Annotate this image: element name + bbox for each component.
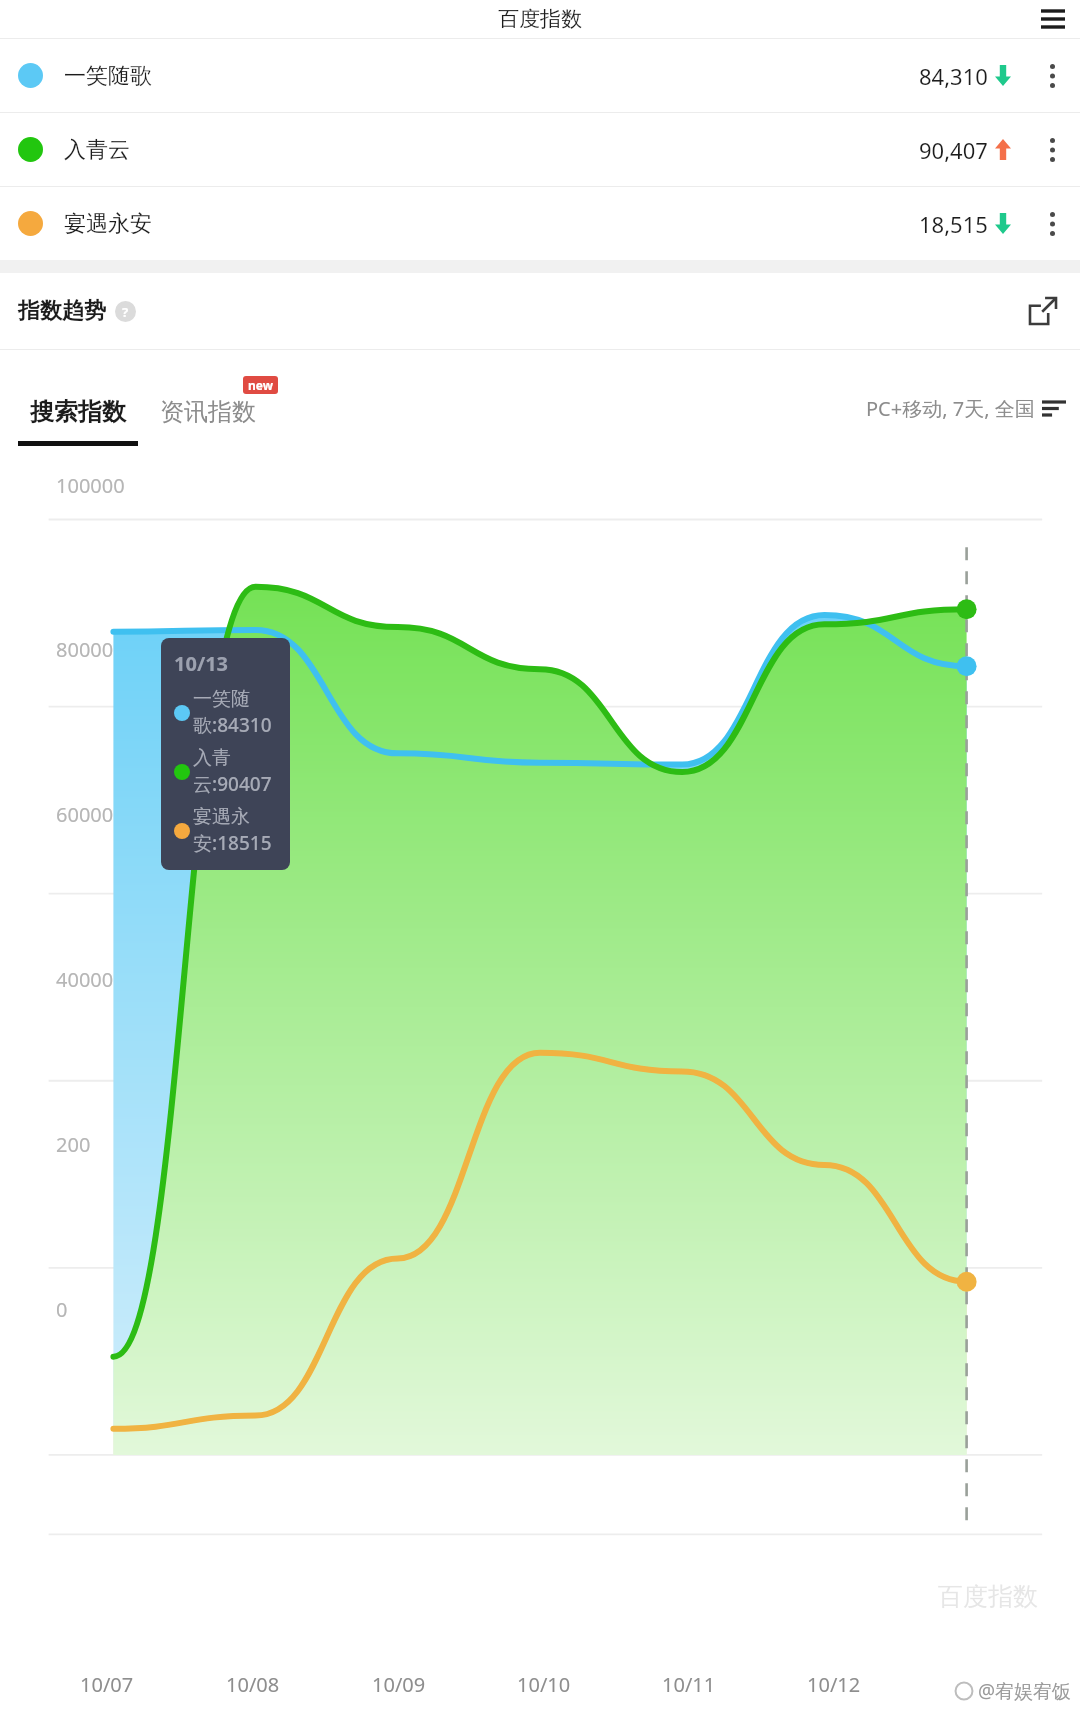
staticText: 10/11 (662, 1671, 716, 1698)
staticText: 搜索指数 (30, 397, 126, 427)
staticText: 10/08 (226, 1671, 280, 1698)
staticText: 10/13 (174, 650, 229, 677)
staticText: new (248, 377, 273, 393)
button[interactable]: 搜索指数 (18, 397, 138, 446)
staticText: 200 (56, 1131, 91, 1158)
button[interactable]: Open full screen (1024, 292, 1062, 330)
staticText: 40000 (56, 966, 114, 993)
staticText: 100000 (56, 472, 125, 499)
staticText: @宥娱宥饭 (978, 1678, 1072, 1704)
staticText: 10/10 (517, 1671, 571, 1698)
staticText: PC+移动, 7天, 全国 (866, 395, 1035, 422)
staticText: 0 (56, 1296, 68, 1323)
button[interactable]: 入青云 (0, 113, 1080, 186)
button[interactable]: 宴遇永安 (0, 187, 1080, 260)
staticText: 百度指数 (938, 1581, 1038, 1612)
button[interactable]: Menu (1037, 3, 1069, 35)
button[interactable]: More options (1035, 133, 1069, 167)
staticText: ? (122, 303, 129, 321)
staticText: 60000 (56, 801, 114, 828)
staticText: 10/09 (372, 1671, 426, 1698)
staticText: 10/12 (807, 1671, 861, 1698)
staticText: 指数趋势 (18, 297, 106, 325)
staticText: 10/07 (80, 1671, 134, 1698)
staticText: 90,407 (919, 135, 988, 165)
staticText: 一笑随歌:84310 (193, 687, 282, 738)
button[interactable]: PC+移动, 7天, 全国 (866, 395, 1066, 422)
staticText: 入青云 (64, 136, 130, 164)
staticText: 80000 (56, 636, 114, 663)
staticText: 百度指数 (498, 6, 582, 32)
button[interactable]: 一笑随歌 (0, 39, 1080, 112)
staticText: 18,515 (919, 209, 988, 239)
staticText: 一笑随歌 (64, 62, 152, 90)
staticText: 资讯指数 (160, 397, 256, 427)
button[interactable]: More options (1035, 207, 1069, 241)
staticText: 入青云:90407 (193, 746, 282, 797)
staticText: 84,310 (919, 61, 988, 91)
button[interactable]: More options (1035, 59, 1069, 93)
button[interactable]: Help (115, 301, 136, 322)
button[interactable]: 资讯指数 (160, 397, 256, 427)
staticText: 宴遇永安:18515 (193, 805, 282, 856)
staticText: 宴遇永安 (64, 210, 152, 238)
